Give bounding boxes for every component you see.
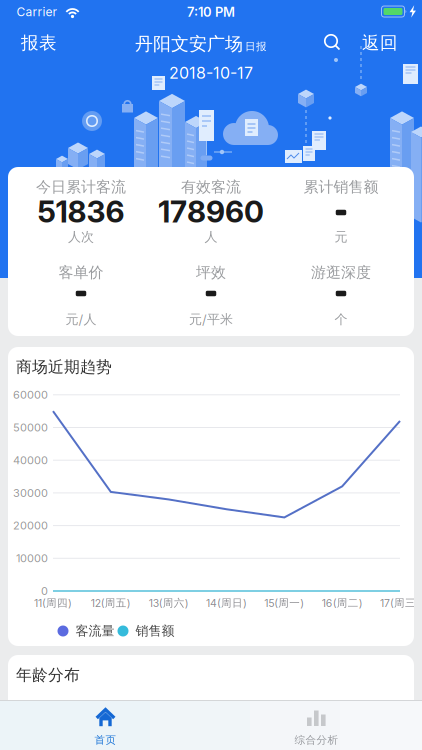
staticText: Carrier	[16, 5, 57, 19]
staticText: 40000	[13, 453, 48, 467]
staticText: 累计销售额	[303, 178, 378, 196]
staticText: 2018-10-17	[169, 63, 253, 83]
button[interactable]: 首页	[0, 700, 211, 750]
staticText: 178960	[158, 193, 264, 230]
staticText: 7:10 PM	[187, 4, 235, 20]
staticText: 元/人	[65, 311, 96, 328]
staticText: 12(周五)	[91, 596, 131, 610]
staticText: 商场近期趋势	[16, 357, 112, 377]
staticText: 客单价	[58, 263, 103, 282]
staticText: 20000	[13, 519, 48, 532]
staticText: 14(周日)	[206, 596, 247, 610]
staticText: 销售额	[135, 623, 174, 639]
staticText: 有效客流	[181, 178, 241, 196]
staticText: 15(周一)	[264, 596, 304, 610]
button[interactable]: 返回	[352, 28, 408, 58]
staticText: 返回	[362, 32, 398, 54]
staticText: 日报	[245, 40, 267, 53]
staticText: 51836	[37, 193, 124, 230]
staticText: 人次	[68, 229, 94, 245]
staticText: 13(周六)	[149, 596, 189, 610]
button[interactable]: 综合分析	[211, 700, 422, 750]
staticText: 客流量	[75, 623, 114, 639]
staticText: 60000	[13, 388, 48, 401]
staticText: 50000	[13, 421, 48, 434]
staticText: 人	[204, 229, 217, 245]
staticText: 10000	[16, 552, 48, 565]
staticText: 0	[41, 584, 48, 598]
staticText: 丹阳文安广场	[135, 33, 243, 55]
staticText: 30000	[13, 486, 48, 499]
staticText: 年龄分布	[16, 665, 80, 685]
staticText: 坪效	[196, 263, 226, 282]
staticText: 11(周四)	[34, 596, 72, 610]
staticText: 个	[334, 311, 347, 328]
staticText: 16(周二)	[322, 596, 363, 610]
staticText: 综合分析	[294, 733, 338, 747]
staticText: 元	[334, 229, 347, 245]
staticText: 今日累计客流	[36, 178, 126, 196]
staticText: 元/平米	[189, 311, 233, 328]
staticText: 17(周三)	[380, 596, 420, 610]
staticText: 报表	[21, 32, 57, 54]
button[interactable]: 报表	[9, 28, 69, 58]
button[interactable]: Search	[317, 28, 347, 58]
staticText: 游逛深度	[311, 263, 371, 282]
staticText: 首页	[94, 733, 116, 747]
